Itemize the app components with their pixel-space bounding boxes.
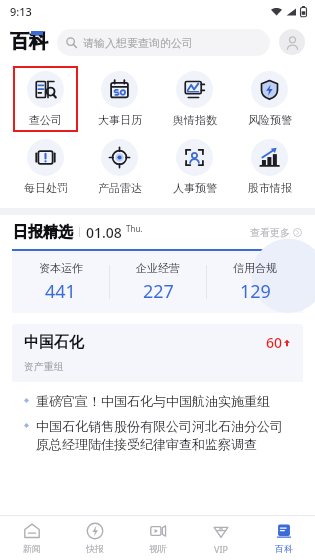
staticText: 新闻 (23, 543, 41, 554)
staticText: Thu. (126, 223, 143, 234)
button[interactable]: 百科 (252, 516, 315, 560)
staticText: 视听 (149, 543, 167, 554)
button[interactable]: 风险预警 (237, 66, 302, 132)
button[interactable]: 大事日历 (87, 66, 152, 132)
staticText: 快报 (86, 543, 104, 554)
staticText: 资本运作 (39, 261, 83, 275)
button[interactable]: 查看更多 (250, 222, 302, 243)
staticText: 129 (240, 279, 271, 304)
staticText: 227 (143, 279, 174, 304)
button[interactable]: 企业经营 (110, 261, 206, 304)
staticText: 重磅官宣！中国石化与中国航油实施重组 (36, 393, 270, 409)
staticText: 舆情指数 (173, 113, 217, 127)
staticText: 企业经营 (136, 261, 180, 275)
staticText: 请输入想要查询的公司 (83, 36, 193, 50)
button[interactable]: Profile (279, 29, 305, 55)
staticText: VIP (214, 543, 228, 555)
button[interactable]: 人事预警 (162, 134, 227, 200)
button[interactable]: 重磅官宣！中国石化与中国航油实施重组 (12, 393, 303, 409)
button[interactable]: VIP (189, 516, 252, 560)
staticText: 产品雷达 (98, 181, 142, 195)
staticText: 股市情报 (248, 181, 292, 195)
staticText: 资产重组 (24, 360, 64, 373)
staticText: 查看更多 (250, 226, 290, 239)
staticText: 60 (266, 333, 283, 352)
staticText: 百科 (10, 30, 48, 54)
button[interactable]: 查公司 (13, 66, 78, 132)
button[interactable]: 资本运作 (12, 261, 109, 304)
button[interactable]: 产品雷达 (87, 134, 152, 200)
button[interactable]: 资本运作 (12, 251, 303, 313)
button[interactable]: 舆情指数 (162, 66, 227, 132)
staticText: 每日处罚 (24, 181, 68, 195)
staticText: 信用合规 (233, 261, 277, 275)
button[interactable]: 视听 (126, 516, 189, 560)
button[interactable]: 中国石化 (12, 324, 303, 453)
staticText: 中国石化 (24, 333, 84, 352)
staticText: 人事预警 (173, 181, 217, 195)
button[interactable]: 快报 (63, 516, 126, 560)
button[interactable]: 新闻 (0, 516, 63, 560)
staticText: 9:13 (10, 4, 32, 19)
button[interactable]: 中国石化销售股份有限公司河北石油分公司原总经理陆佳接受纪律审查和监察调查 (12, 418, 303, 453)
button[interactable]: 请输入想要查询的公司 (57, 29, 270, 56)
button[interactable]: 每日处罚 (13, 134, 78, 200)
staticText: 大事日历 (98, 113, 142, 127)
staticText: 441 (45, 279, 76, 304)
staticText: 查公司 (29, 113, 62, 127)
staticText: 中国石化销售股份有限公司河北石油分公司原总经理陆佳接受纪律审查和监察调查 (36, 418, 291, 453)
button[interactable]: 信用合规 (207, 261, 303, 304)
staticText: 01.08 (86, 223, 122, 242)
button[interactable]: 股市情报 (237, 134, 302, 200)
staticText: 百科 (275, 543, 293, 554)
button[interactable]: 百科 (10, 30, 48, 54)
staticText: 风险预警 (248, 113, 292, 127)
staticText: 日报精选 (13, 223, 73, 242)
